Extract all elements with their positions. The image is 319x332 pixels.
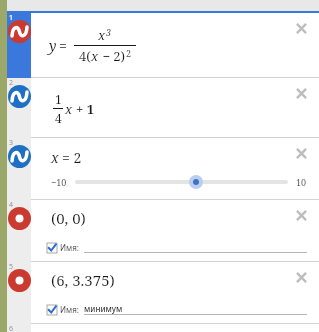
staticText: − 2) <box>99 47 126 65</box>
staticText: (6, 3.375) <box>51 270 115 290</box>
button[interactable]: Имя: <box>47 304 79 315</box>
staticText: x <box>98 26 106 44</box>
button[interactable]: минимум <box>84 303 307 315</box>
staticText: x <box>91 47 99 65</box>
staticText: x <box>51 148 59 167</box>
staticText: Имя: <box>60 304 79 315</box>
staticText: 3 <box>106 26 112 38</box>
button[interactable]: 4 <box>7 200 31 262</box>
staticText: 3 <box>9 138 14 148</box>
button[interactable]: 1 <box>7 13 31 78</box>
staticText: 1 <box>55 91 62 107</box>
staticText: x <box>65 100 73 118</box>
staticText: −10 <box>51 176 67 188</box>
staticText: 4 <box>55 110 62 126</box>
staticText: 2 <box>9 78 14 88</box>
staticText: 10 <box>296 176 307 188</box>
button[interactable] <box>84 243 307 253</box>
button[interactable] <box>75 175 288 189</box>
staticText: 6 <box>9 324 14 332</box>
staticText: 2 <box>126 47 132 59</box>
staticText: минимум <box>84 303 123 314</box>
button[interactable]: Delete row 3 <box>292 144 311 163</box>
staticText: 4 <box>9 200 14 210</box>
button[interactable]: Имя: <box>47 242 79 253</box>
staticText: Имя: <box>60 242 79 253</box>
button[interactable]: Delete row 4 <box>292 206 311 225</box>
staticText: 4( <box>79 47 91 65</box>
staticText: = 2 <box>62 148 82 167</box>
button[interactable]: Delete row 1 <box>292 19 311 38</box>
staticText: + 1 <box>76 100 95 118</box>
button[interactable]: 3 <box>7 138 31 200</box>
button[interactable]: 2 <box>7 78 31 138</box>
staticText: 5 <box>9 262 14 272</box>
staticText: (0, 0) <box>51 208 86 228</box>
staticText: = <box>59 36 67 55</box>
button[interactable]: Delete row 2 <box>292 84 311 103</box>
button[interactable]: 5 <box>7 262 31 324</box>
button[interactable]: Delete row 5 <box>292 268 311 287</box>
staticText: 1 <box>9 13 14 23</box>
staticText: y <box>49 36 57 55</box>
